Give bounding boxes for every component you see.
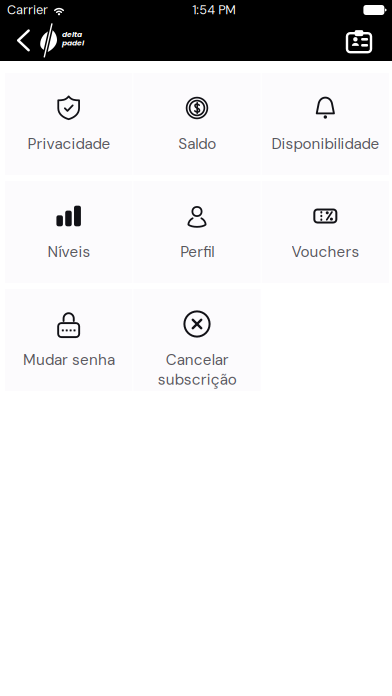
staticText: Níveis	[47, 242, 90, 262]
button[interactable]: Cancelar subscrição	[133, 289, 261, 391]
button[interactable]: Perfil	[133, 181, 261, 283]
staticText: 1:54 PM	[192, 2, 236, 18]
staticText: delta	[62, 29, 82, 40]
button[interactable]: Back	[0, 22, 39, 59]
staticText: Vouchers	[291, 242, 359, 262]
button[interactable]: Saldo	[133, 73, 261, 175]
staticText: Saldo	[178, 134, 216, 154]
staticText: Carrier	[7, 2, 48, 18]
staticText: Perfil	[180, 242, 214, 262]
button[interactable]: Mudar senha	[5, 289, 132, 391]
staticText: padel	[62, 37, 84, 48]
staticText: Cancelar subscrição	[157, 350, 236, 390]
staticText: Disponibilidade	[271, 134, 379, 154]
staticText: Privacidade	[27, 134, 110, 154]
button[interactable]: Níveis	[5, 181, 132, 283]
button[interactable]: Vouchers	[262, 181, 389, 283]
button[interactable]: Privacidade	[5, 73, 132, 175]
button[interactable]: Disponibilidade	[262, 73, 389, 175]
staticText: Mudar senha	[23, 350, 115, 370]
button[interactable]: Member card	[337, 21, 392, 59]
